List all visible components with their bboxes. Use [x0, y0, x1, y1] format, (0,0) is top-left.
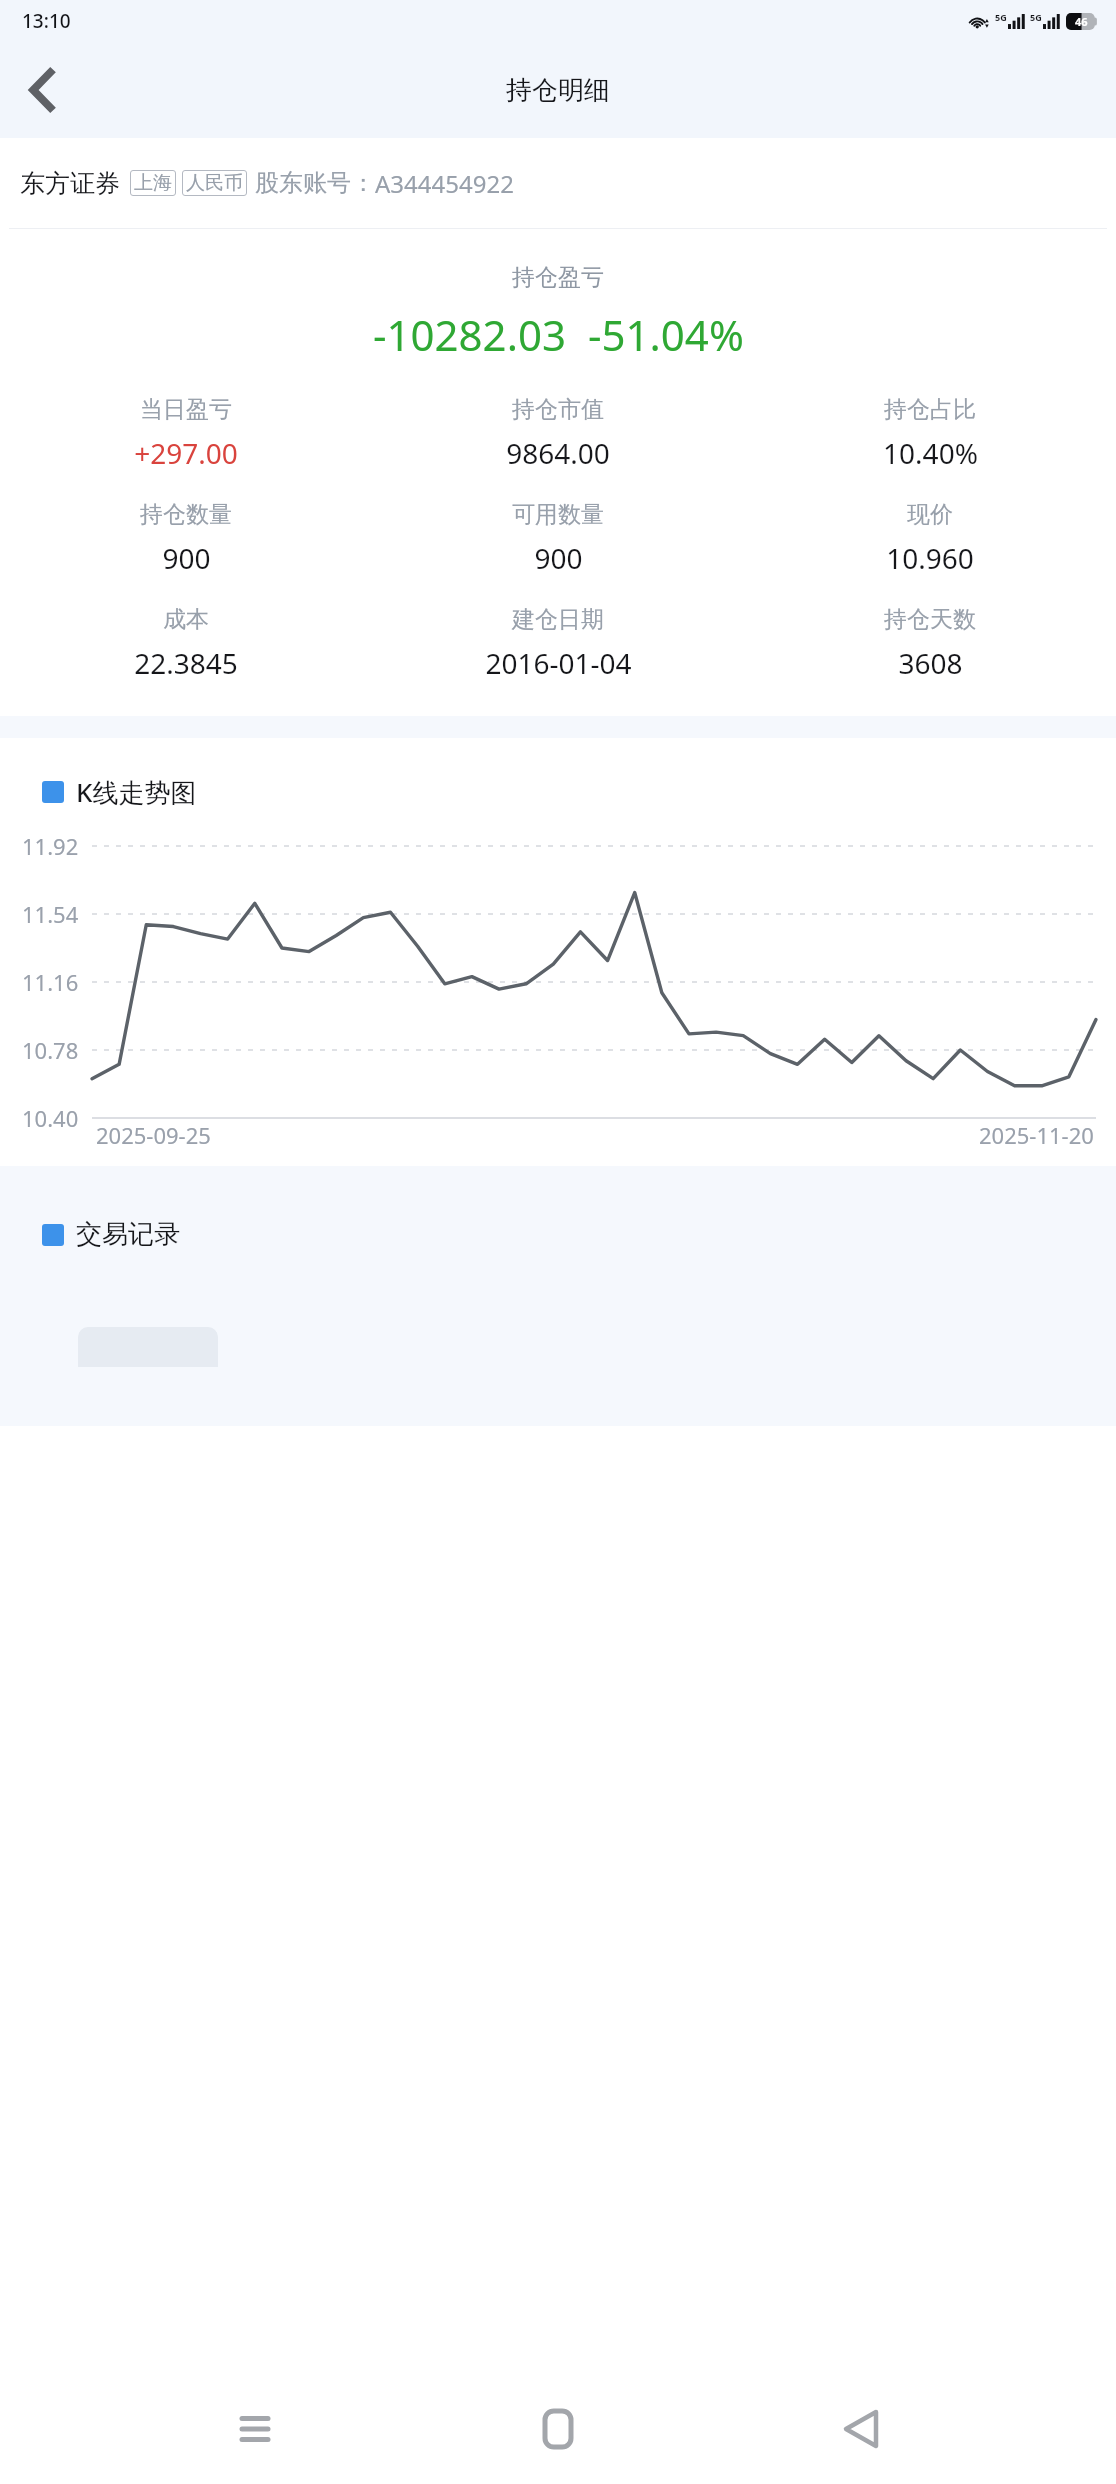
staticText: K线走势图: [76, 774, 197, 810]
staticText: 持仓天数: [884, 605, 976, 634]
staticText: 46: [1075, 14, 1088, 29]
staticText: -51.04%: [588, 306, 744, 363]
staticText: 2016-01-04: [485, 644, 632, 682]
staticText: 建仓日期: [512, 605, 604, 634]
staticText: 成本: [163, 605, 209, 634]
staticText: 交易记录: [76, 1218, 180, 1251]
staticText: 当日盈亏: [140, 395, 232, 424]
button[interactable]: Home: [510, 2381, 606, 2477]
staticText: 5G: [1030, 11, 1042, 23]
staticText: A344454922: [375, 167, 514, 200]
staticText: 13:10: [22, 8, 71, 34]
staticText: 持仓明细: [506, 74, 610, 107]
staticText: 持仓市值: [512, 395, 604, 424]
staticText: 9864.00: [506, 434, 610, 472]
staticText: 2025-09-25: [96, 1120, 211, 1150]
staticText: 11.54: [22, 899, 79, 929]
staticText: 10.78: [22, 1035, 79, 1065]
staticText: 持仓盈亏: [512, 263, 604, 292]
staticText: 900: [162, 539, 211, 577]
staticText: 持仓数量: [140, 500, 232, 529]
button[interactable]: K线走势图: [42, 774, 1116, 810]
staticText: 11.16: [22, 967, 79, 997]
button[interactable]: Back: [813, 2381, 909, 2477]
staticText: 3608: [898, 644, 963, 682]
staticText: 可用数量: [512, 500, 604, 529]
staticText: 股东账号：: [255, 168, 375, 198]
staticText: +297.00: [134, 434, 238, 472]
staticText: 22.3845: [134, 644, 238, 682]
button[interactable]: 东方证券: [20, 138, 1106, 228]
staticText: 10.40: [22, 1103, 79, 1133]
staticText: 900: [534, 539, 583, 577]
staticText: 11.92: [22, 831, 79, 861]
staticText: 现价: [907, 500, 953, 529]
staticText: -10282.03: [373, 306, 566, 363]
staticText: 10.960: [886, 539, 974, 577]
button[interactable]: 交易记录: [42, 1218, 1116, 1251]
button[interactable]: Recent apps: [207, 2381, 303, 2477]
staticText: 2025-11-20: [979, 1120, 1094, 1150]
staticText: 持仓占比: [884, 395, 976, 424]
staticText: 5G: [995, 11, 1007, 23]
staticText: 10.40%: [883, 434, 978, 472]
staticText: 上海: [134, 171, 172, 195]
staticText: 人民币: [186, 171, 243, 195]
button[interactable]: Back: [6, 54, 78, 126]
staticText: 东方证券: [20, 168, 120, 199]
